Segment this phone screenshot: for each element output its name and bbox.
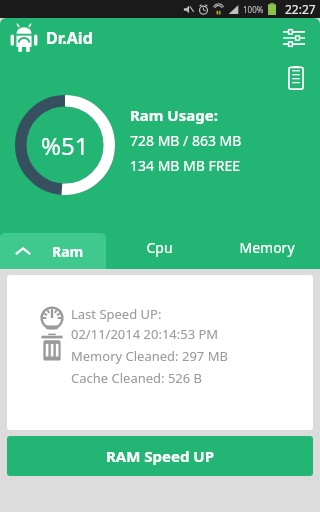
staticText: 134 MB MB FREE — [130, 156, 241, 175]
button[interactable]: Ram — [0, 233, 106, 269]
staticText: Ram Usage: — [130, 105, 218, 125]
staticText: 728 MB / 863 MB — [130, 131, 242, 150]
staticText: Ram — [52, 242, 84, 261]
button[interactable]: Settings — [276, 20, 312, 56]
staticText: 02/11/2014 20:14:53 PM — [71, 325, 219, 343]
staticText: Cpu — [146, 238, 173, 257]
staticText: Last Speed UP: — [71, 305, 162, 323]
staticText: Memory Cleaned: 297 MB — [71, 347, 228, 365]
button[interactable]: Cpu — [106, 225, 213, 269]
staticText: %51 — [41, 129, 89, 162]
button[interactable]: RAM Speed UP — [7, 436, 313, 476]
staticText: 100% — [243, 4, 264, 15]
staticText: Memory — [239, 238, 295, 257]
staticText: Dr.Aid — [46, 27, 93, 49]
button[interactable]: Memory — [213, 225, 320, 269]
button[interactable]: Last Speed UP: — [7, 275, 313, 430]
staticText: 22:27 — [285, 1, 316, 17]
button[interactable]: Battery — [282, 64, 310, 92]
staticText: Cache Cleaned: 526 B — [71, 369, 203, 387]
staticText: RAM Speed UP — [106, 446, 214, 466]
